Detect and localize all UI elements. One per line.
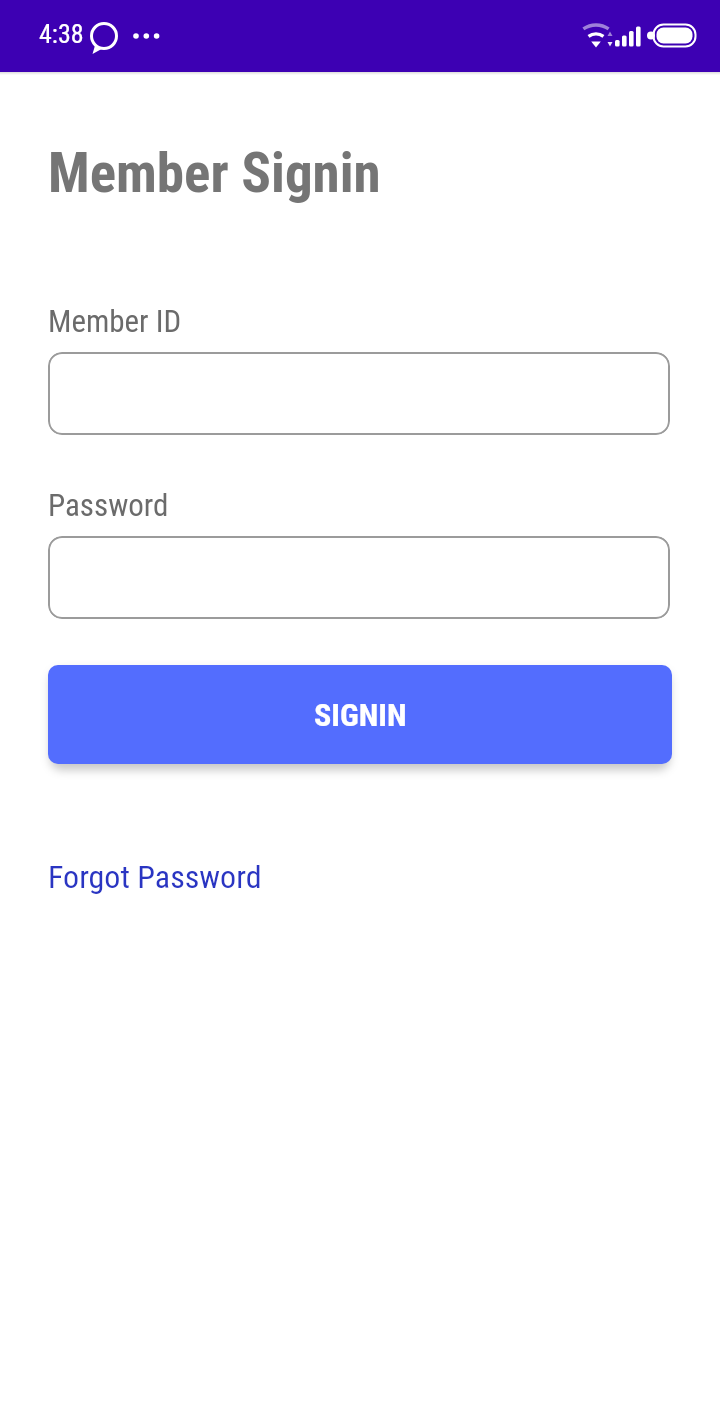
button[interactable]: SIGNIN	[48, 665, 672, 764]
button[interactable]	[48, 536, 670, 619]
staticText: Password	[48, 487, 169, 523]
staticText: SIGNIN	[314, 696, 407, 734]
staticText: 4:38	[39, 19, 84, 49]
staticText: Member Signin	[48, 141, 381, 205]
button[interactable]: Forgot Password	[48, 858, 262, 896]
staticText: Member ID	[48, 303, 182, 339]
button[interactable]	[48, 352, 670, 435]
